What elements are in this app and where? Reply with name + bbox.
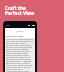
staticText: Craft the Perfect View <box>5 5 35 16</box>
staticText: The quick brown fox jumps over the lazy … <box>6 38 34 72</box>
button[interactable]: Journal <box>5 30 35 33</box>
staticText: The Art of Layout <box>6 35 24 38</box>
